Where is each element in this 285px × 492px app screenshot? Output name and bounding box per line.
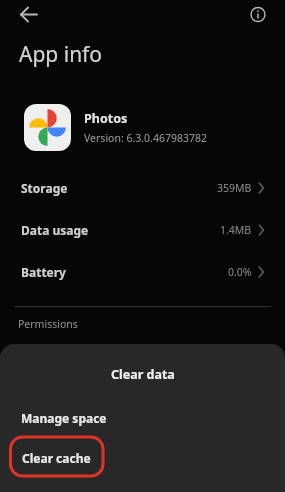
staticText: Manage space: [21, 410, 107, 426]
staticText: Data usage: [21, 222, 89, 238]
staticText: Version: 6.3.0.467983782: [84, 131, 207, 145]
button[interactable]: Data usage: [0, 209, 285, 251]
button[interactable]: Storage: [0, 167, 285, 209]
staticText: Permissions: [18, 317, 78, 331]
button[interactable]: Manage space: [0, 402, 285, 434]
button[interactable]: Photos: [0, 98, 285, 156]
button[interactable]: [12, 2, 46, 28]
staticText: Battery: [21, 264, 66, 280]
staticText: Photos: [84, 110, 128, 127]
staticText: App info: [19, 40, 103, 69]
button[interactable]: Clear cache: [0, 442, 285, 474]
button[interactable]: Battery: [0, 251, 285, 293]
staticText: Storage: [21, 180, 68, 196]
staticText: 359MB: [217, 181, 252, 195]
staticText: Clear cache: [22, 450, 91, 466]
staticText: 1.4MB: [220, 223, 252, 237]
button[interactable]: [246, 2, 272, 28]
staticText: 0.0%: [228, 265, 252, 279]
staticText: Clear data: [111, 366, 175, 383]
